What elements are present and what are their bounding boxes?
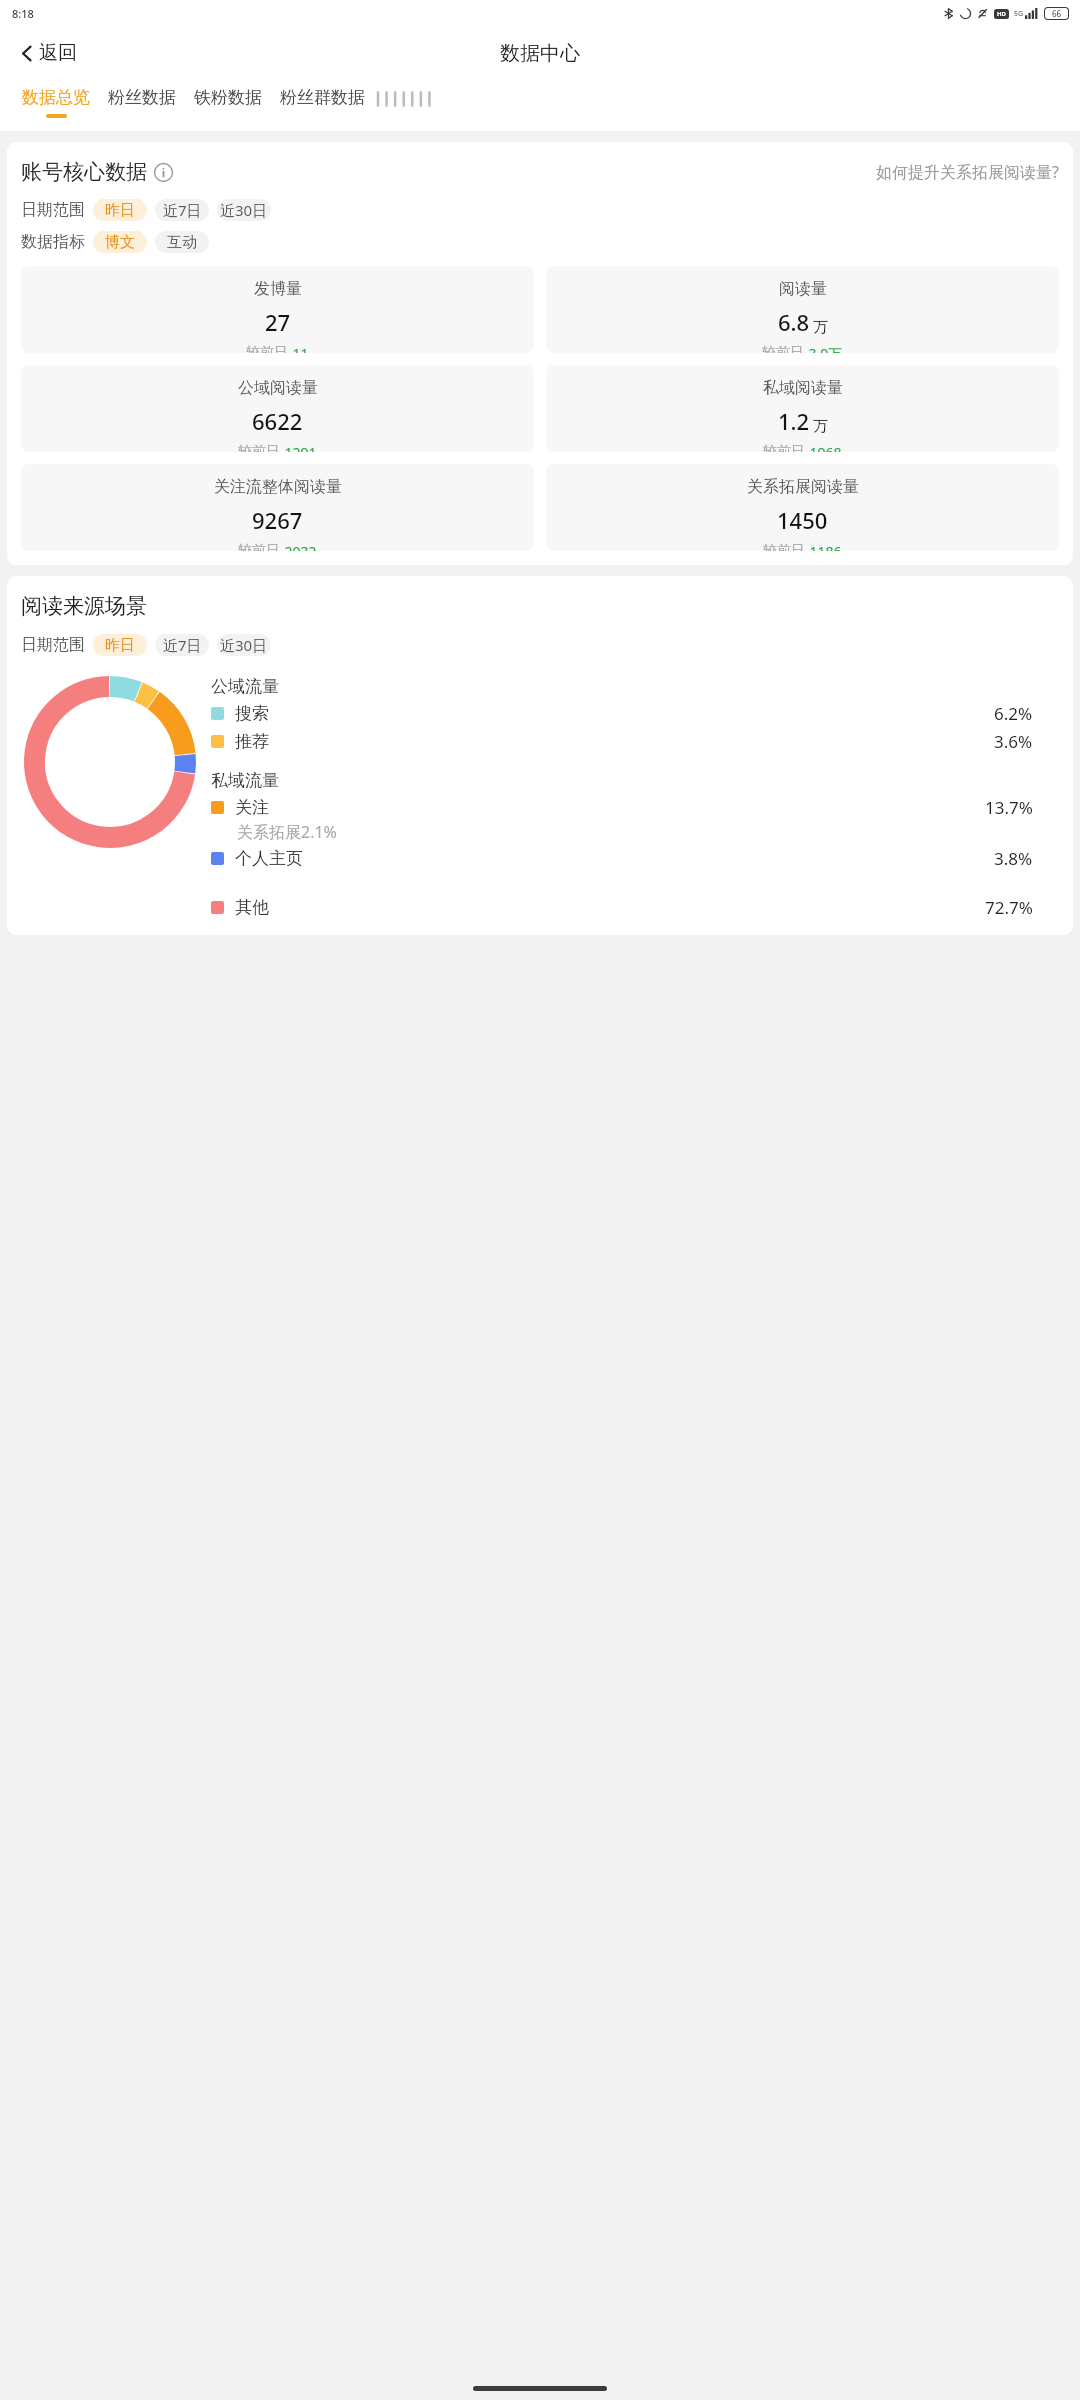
button[interactable]: 关注流整体阅读量 [21,464,534,551]
staticText: 8:18 [12,6,34,21]
staticText: 较前日 [762,344,804,353]
staticText: 近30日 [220,200,268,220]
staticText: 数据总览 [22,87,90,108]
staticText: -3.9万 [804,344,843,353]
staticText: 阅读来源场景 [21,593,147,619]
staticText: -1291 [280,443,317,452]
staticText: HD [997,10,1006,18]
staticText: -11 [288,344,309,353]
button[interactable]: 关系拓展阅读量 [546,464,1059,551]
staticText: 27 [265,307,291,337]
staticText: 6622 [252,406,303,436]
button[interactable]: 数据总览 [22,80,90,118]
staticText: 较前日 [238,443,280,452]
staticText: 9267 [252,505,303,535]
button[interactable]: 昨日 [93,199,147,221]
staticText: -1186 [805,542,842,551]
staticText: 私域流量 [211,770,279,791]
staticText: 日期范围 [21,635,85,655]
staticText: 1.2 [778,406,810,436]
button[interactable]: 如何提升关系拓展阅读量? [876,161,1059,183]
button[interactable]: 近7日 [155,634,209,656]
staticText: 昨日 [105,636,135,655]
button[interactable]: 个人主页 [211,847,1059,870]
staticText: 关注流整体阅读量 [214,477,342,497]
staticText: 公域阅读量 [238,378,318,398]
staticText: 博文 [105,233,135,252]
staticText: -1968 [805,443,842,452]
button[interactable]: 铁粉数据 [194,80,262,114]
staticText: 较前日 [763,443,805,452]
button[interactable]: 搜索 [211,702,1059,725]
staticText: 数据中心 [500,41,580,66]
button[interactable]: 近30日 [217,634,271,656]
staticText: 6.8 [778,307,810,337]
staticText: 近7日 [163,200,202,220]
staticText: 3.6% [994,730,1033,753]
button[interactable]: 其他 [211,896,1059,919]
button[interactable]: 博文 [93,231,147,253]
staticText: 万 [813,318,828,337]
staticText: 6.2% [994,702,1033,725]
staticText: 公域流量 [211,676,279,697]
staticText: 万 [813,417,828,436]
staticText: 账号核心数据 [21,159,147,185]
staticText: 搜索 [235,703,269,724]
staticText: 返回 [39,41,77,65]
staticText: -2032 [280,542,317,551]
staticText: 13.7% [985,796,1033,819]
button[interactable]: 互动 [155,231,209,253]
button[interactable]: 粉丝数据 [108,80,176,114]
staticText: 昨日 [105,201,135,220]
button[interactable]: 返回 [14,35,81,71]
staticText: 关系拓展阅读量 [747,477,859,497]
staticText: 粉丝数据 [108,87,176,108]
staticText: 粉丝群数据 [280,87,365,108]
button[interactable]: 关注 [211,796,1059,819]
button[interactable] [375,89,435,109]
staticText: 数据指标 [21,232,85,252]
staticText: 72.7% [985,896,1033,919]
staticText: 较前日 [763,542,805,551]
button[interactable]: 近30日 [217,199,271,221]
button[interactable]: 发博量 [21,266,534,353]
staticText: 个人主页 [235,848,303,869]
button[interactable]: 近7日 [155,199,209,221]
button[interactable]: 昨日 [93,634,147,656]
staticText: 互动 [167,233,197,252]
staticText: 66 [1052,8,1062,19]
staticText: 推荐 [235,731,269,752]
button[interactable]: 公域阅读量 [21,365,534,452]
staticText: 较前日 [238,542,280,551]
staticText: 关注 [235,797,269,818]
button[interactable]: 推荐 [211,730,1059,753]
staticText: 5G [1014,9,1024,19]
button[interactable]: 说明 [154,163,173,182]
button[interactable]: 粉丝群数据 [280,80,365,114]
staticText: 日期范围 [21,200,85,220]
staticText: 铁粉数据 [194,87,262,108]
staticText: 关系拓展2.1% [237,821,337,843]
staticText: 私域阅读量 [763,378,843,398]
staticText: 发博量 [254,279,302,299]
button[interactable]: 阅读量 [546,266,1059,353]
staticText: 阅读量 [779,279,827,299]
staticText: 近7日 [163,635,202,655]
staticText: 其他 [235,897,269,918]
staticText: 较前日 [246,344,288,353]
staticText: 1450 [777,505,828,535]
staticText: 3.8% [994,847,1033,870]
button[interactable]: 私域阅读量 [546,365,1059,452]
staticText: 近30日 [220,635,268,655]
